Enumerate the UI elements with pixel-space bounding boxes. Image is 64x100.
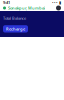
staticText: ••• ▮	[52, 0, 61, 5]
staticText: Sonakpur, Mumbai	[8, 5, 45, 11]
staticText: 9:41	[3, 0, 10, 5]
staticText: Total Balance	[3, 15, 26, 21]
staticText: Recharge	[6, 26, 25, 31]
